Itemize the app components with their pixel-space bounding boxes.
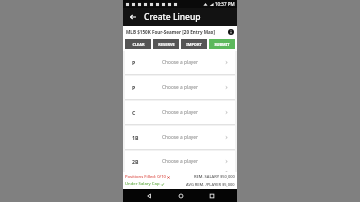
button[interactable]: Contest info bbox=[226, 27, 235, 36]
button[interactable]: SUBMIT bbox=[209, 39, 235, 49]
button[interactable]: Back bbox=[142, 189, 155, 202]
staticText: P bbox=[132, 59, 136, 66]
staticText: CLEAR bbox=[132, 42, 145, 47]
button[interactable]: IMPORT bbox=[181, 39, 207, 49]
button[interactable]: C bbox=[125, 101, 235, 124]
staticText: Choose a player bbox=[162, 109, 199, 116]
staticText: 2B bbox=[132, 158, 139, 165]
button[interactable]: CLEAR bbox=[125, 39, 151, 49]
button[interactable]: P bbox=[125, 51, 235, 74]
staticText: AVG REM. /PLAYER $5,000 bbox=[186, 182, 235, 187]
button[interactable]: 1B bbox=[125, 126, 235, 149]
staticText: Choose a player bbox=[162, 59, 199, 66]
button[interactable]: Back bbox=[126, 10, 140, 24]
staticText: Positions Filled: 0/10 bbox=[125, 174, 166, 180]
button[interactable]: RESERVE bbox=[153, 39, 179, 49]
button[interactable]: P bbox=[125, 76, 235, 99]
staticText: Choose a player bbox=[162, 158, 199, 165]
staticText: Choose a player bbox=[162, 134, 199, 141]
staticText: Choose a player bbox=[162, 84, 199, 91]
button[interactable]: Recents bbox=[205, 189, 218, 202]
staticText: C bbox=[132, 109, 136, 116]
staticText: MLB $150K Four-Seamer [20 Entry Max] bbox=[126, 29, 215, 35]
staticText: 1B bbox=[132, 134, 139, 141]
button[interactable]: 2B bbox=[125, 151, 235, 172]
staticText: P bbox=[132, 84, 136, 91]
staticText: Under Salary Cap bbox=[125, 181, 160, 187]
staticText: RESERVE bbox=[158, 42, 175, 47]
staticText: REM. SALARY $50,000 bbox=[194, 174, 235, 179]
staticText: Create Lineup bbox=[144, 11, 201, 23]
staticText: 10:37 PM bbox=[215, 1, 235, 7]
staticText: IMPORT bbox=[186, 42, 202, 47]
button[interactable]: Home bbox=[174, 189, 187, 202]
staticText: SUBMIT bbox=[214, 42, 230, 47]
